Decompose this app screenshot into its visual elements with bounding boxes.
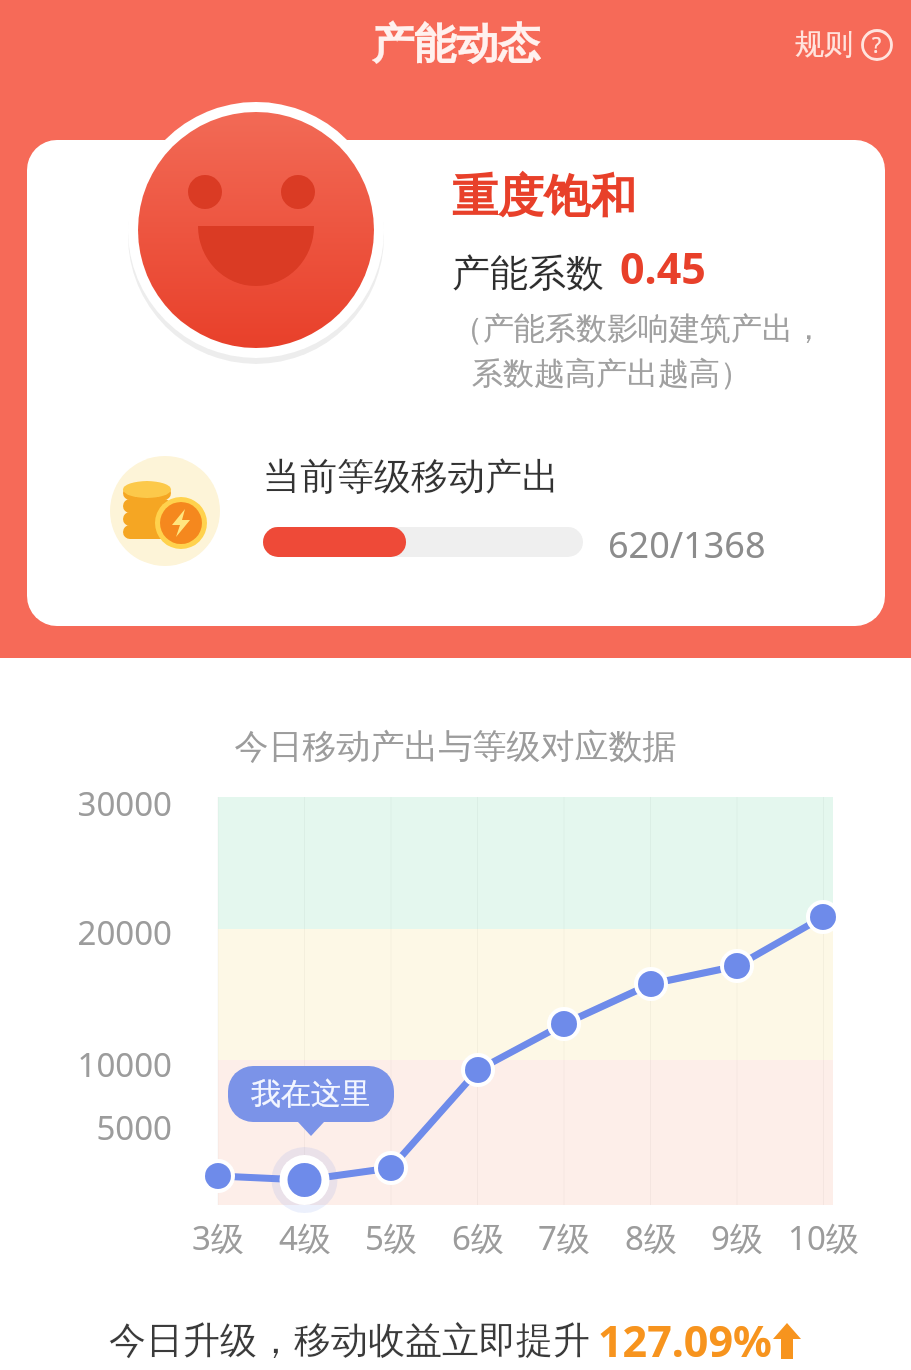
staticText: 8级 <box>625 1215 677 1260</box>
other: 帮助 <box>861 29 893 61</box>
staticText: 产能系数 <box>452 249 604 297</box>
staticText: 30000 <box>77 781 172 826</box>
staticText: 7级 <box>538 1215 590 1260</box>
staticText: 20000 <box>77 910 172 955</box>
button[interactable] <box>27 140 885 626</box>
staticText: 规则 <box>795 26 853 63</box>
staticText: 今日升级，移动收益立即提升 <box>109 1317 590 1364</box>
staticText: ? <box>872 31 882 60</box>
staticText: 产能动态 <box>372 18 540 71</box>
staticText: 5000 <box>96 1105 172 1150</box>
staticText: 今日移动产出与等级对应数据 <box>0 725 911 768</box>
staticText: 我在这里 <box>251 1075 371 1113</box>
staticText: 4级 <box>279 1215 331 1260</box>
staticText: 10000 <box>77 1042 172 1087</box>
staticText: 重度饱和 <box>452 168 636 226</box>
staticText: （产能系数影响建筑产出， <box>452 309 824 348</box>
staticText: 6级 <box>452 1215 504 1260</box>
staticText: 0.45 <box>620 238 706 297</box>
staticText: 3级 <box>192 1215 244 1260</box>
staticText: 620/1368 <box>608 520 766 569</box>
staticText: 5级 <box>365 1215 417 1260</box>
staticText: 9级 <box>711 1215 763 1260</box>
staticText: 系数越高产出越高） <box>472 354 751 393</box>
staticText: 当前等级移动产出 <box>263 453 559 500</box>
staticText: 127.09% <box>598 1311 772 1370</box>
staticText: 10级 <box>788 1215 859 1260</box>
button[interactable]: 规则 <box>789 18 899 71</box>
button[interactable]: 我在这里 <box>228 1066 394 1136</box>
